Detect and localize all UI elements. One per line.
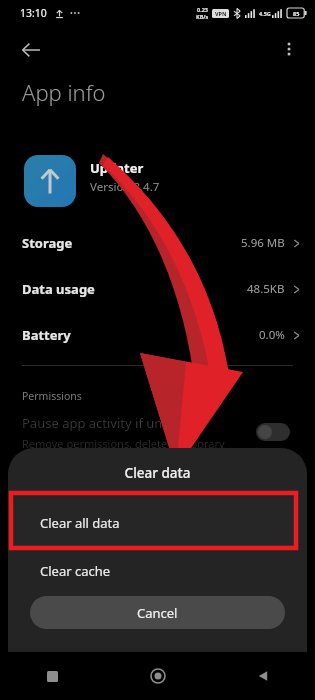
staticText: App info	[22, 77, 106, 107]
staticText: 5.96 MB	[241, 235, 285, 251]
staticText: Battery	[22, 326, 71, 344]
staticText: Data usage	[22, 280, 95, 298]
staticText: Remove permissions, delete temporary	[22, 436, 225, 451]
staticText: 85	[293, 10, 300, 17]
staticText: Updater	[90, 159, 144, 177]
staticText: Clear data	[8, 464, 307, 482]
staticText: 4.5G	[259, 10, 271, 17]
button[interactable]: Storage	[0, 228, 315, 258]
staticText: 13:10	[20, 6, 47, 20]
staticText: Pause app activity if unused	[22, 414, 192, 432]
staticText: Cancel	[137, 604, 178, 622]
button[interactable]: Cancel	[30, 596, 285, 629]
staticText: 0.23	[197, 6, 208, 13]
staticText: Storage	[22, 234, 73, 252]
staticText: Version 8.4.7	[90, 179, 160, 195]
button[interactable]: Pause app activity toggle	[256, 423, 290, 441]
button[interactable]: More options	[273, 33, 305, 65]
button[interactable]: Data usage	[0, 274, 315, 304]
button[interactable]: Recents	[0, 652, 105, 700]
button[interactable]: Clear cache	[14, 550, 299, 592]
staticText: Clear all data	[40, 514, 120, 532]
button[interactable]: Back	[210, 652, 315, 700]
button[interactable]: Battery	[0, 320, 315, 350]
button[interactable]: Back	[14, 33, 48, 67]
staticText: 0.0%	[259, 327, 285, 343]
button[interactable]: Clear all data	[14, 498, 299, 548]
staticText: Clear cache	[40, 562, 111, 580]
staticText: 48.5KB	[247, 281, 285, 297]
staticText: Permissions	[22, 389, 82, 403]
staticText: VPN	[215, 10, 227, 17]
button[interactable]: Home	[105, 652, 210, 700]
staticText: KB/s	[196, 13, 209, 20]
